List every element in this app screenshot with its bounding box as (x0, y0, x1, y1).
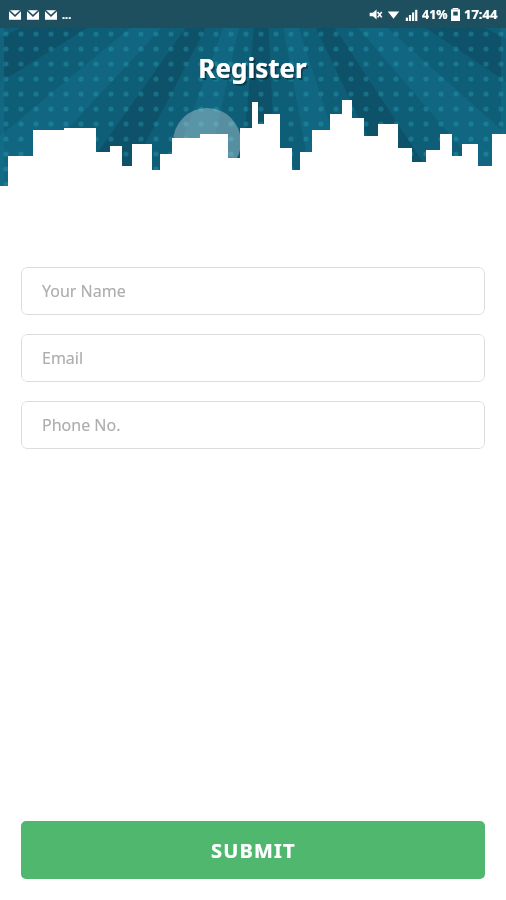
button[interactable]: Phone No. (21, 401, 485, 449)
staticText: ... (62, 7, 72, 22)
button[interactable]: Email (21, 334, 485, 382)
staticText: Your Name (42, 280, 126, 302)
staticText: 17:44 (464, 5, 498, 23)
staticText: Email (42, 347, 84, 369)
staticText: 41% (422, 6, 448, 23)
staticText: Phone No. (42, 414, 121, 436)
button[interactable]: Submit (21, 821, 485, 879)
button[interactable]: Your Name (21, 267, 485, 315)
staticText: SUBMIT (211, 837, 296, 864)
staticText: Register (200, 52, 309, 87)
staticText: Register (198, 50, 307, 85)
